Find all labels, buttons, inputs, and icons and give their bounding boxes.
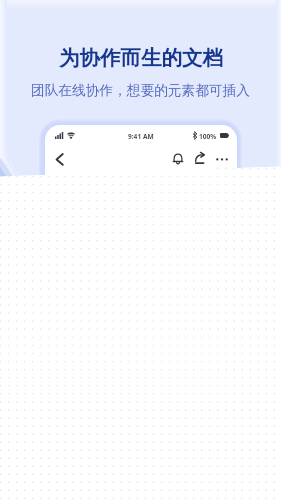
button[interactable]: Back <box>48 148 70 170</box>
staticText: 为协作而生的文档 <box>59 45 223 71</box>
button[interactable]: Share <box>190 149 210 169</box>
button[interactable]: Notifications <box>168 149 188 169</box>
staticText: 9:41 AM <box>128 132 154 141</box>
button[interactable]: More options <box>212 149 232 169</box>
staticText: 团队在线协作，想要的元素都可插入 <box>31 82 250 99</box>
staticText: 100% <box>199 132 217 141</box>
